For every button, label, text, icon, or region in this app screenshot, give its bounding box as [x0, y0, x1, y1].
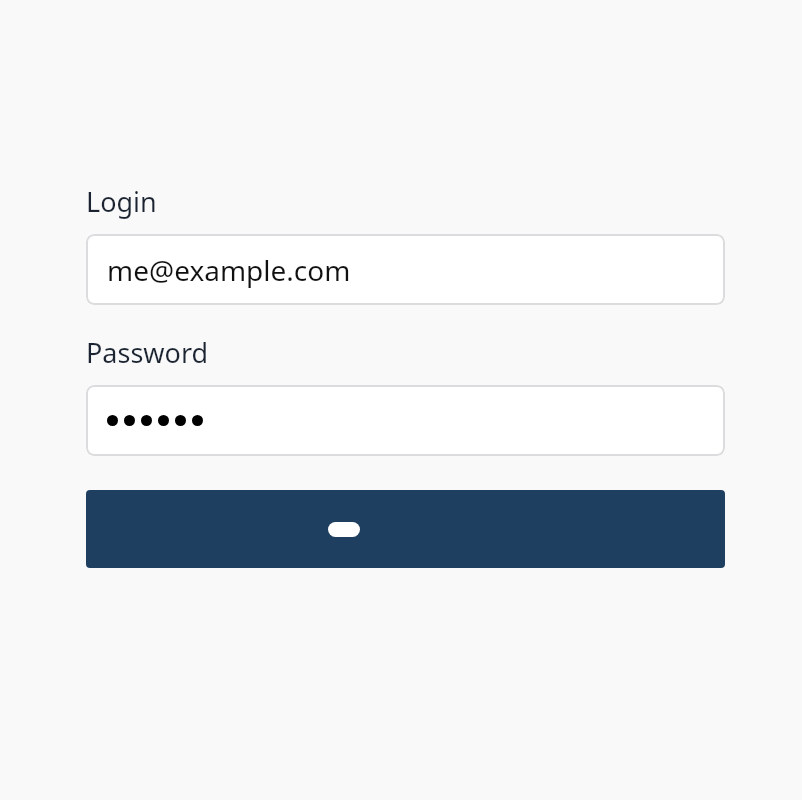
staticText: me@example.com — [107, 251, 351, 289]
button[interactable]: Password field — [86, 385, 725, 456]
button[interactable]: me@example.com — [86, 234, 725, 305]
staticText: Login — [86, 183, 157, 220]
staticText: Password — [86, 334, 209, 371]
button[interactable]: Submit — [86, 490, 725, 568]
